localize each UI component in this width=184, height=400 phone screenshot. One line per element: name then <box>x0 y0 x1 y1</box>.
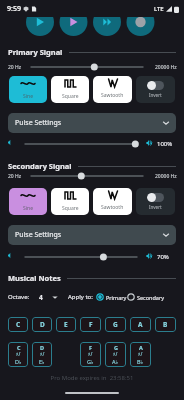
button[interactable]: Invert <box>136 188 175 215</box>
staticText: D♭ <box>15 358 22 365</box>
button[interactable]: G <box>105 342 126 367</box>
staticText: 4 <box>39 293 43 302</box>
staticText: Sine <box>23 93 33 100</box>
button[interactable]: Mute <box>6 251 15 260</box>
staticText: G <box>113 320 118 329</box>
button[interactable]: Play secondary <box>60 17 88 36</box>
staticText: 20000 Hz <box>155 173 177 180</box>
staticText: Square <box>62 205 79 212</box>
staticText: Primary Signal <box>8 47 63 57</box>
staticText: 20 Hz <box>8 173 22 180</box>
button[interactable]: A <box>130 317 151 332</box>
button[interactable]: Play primary <box>26 17 54 36</box>
staticText: ♯/ <box>138 351 143 358</box>
button[interactable]: E <box>56 317 76 332</box>
button[interactable]: C <box>8 342 28 367</box>
staticText: Sine <box>23 205 33 212</box>
button[interactable]: B <box>155 317 176 332</box>
staticText: 100% <box>157 140 173 148</box>
staticText: Pulse Settings <box>15 118 62 128</box>
staticText: Pulse Settings <box>15 230 62 240</box>
button[interactable]: Mute <box>6 138 15 147</box>
staticText: E <box>64 320 68 329</box>
button[interactable]: A <box>130 342 151 367</box>
staticText: 9:59 <box>7 4 21 14</box>
staticText: 20 Hz <box>8 64 22 71</box>
staticText: A <box>138 320 143 329</box>
staticText: F <box>89 344 93 351</box>
staticText: Octave: <box>8 293 30 301</box>
staticText: B <box>163 320 168 329</box>
button[interactable]: D <box>32 342 52 367</box>
staticText: F <box>89 320 93 329</box>
staticText: ♯/ <box>88 351 93 358</box>
staticText: C <box>16 320 21 329</box>
button[interactable]: F <box>80 317 101 332</box>
staticText: Invert <box>149 204 162 210</box>
staticText: LTE <box>154 5 164 13</box>
button[interactable]: G <box>105 317 126 332</box>
staticText: Sawtooth <box>101 92 124 99</box>
button[interactable]: Invert <box>136 76 175 103</box>
button[interactable]: Square <box>51 188 89 215</box>
staticText: Secondary Signal <box>8 161 72 171</box>
button[interactable]: Pulse Settings <box>8 113 176 133</box>
staticText: 70% <box>157 253 169 261</box>
button[interactable]: Pulse Settings <box>8 225 176 245</box>
button[interactable]: C <box>8 317 28 332</box>
button[interactable]: Play both <box>94 17 122 36</box>
button[interactable]: F <box>80 342 101 367</box>
staticText: Square <box>62 93 79 100</box>
staticText: D <box>40 344 45 351</box>
button[interactable]: Sine <box>9 188 47 215</box>
staticText: ♯/ <box>40 351 45 358</box>
staticText: G <box>114 344 118 351</box>
staticText: C <box>17 344 21 351</box>
button[interactable]: Octave selector <box>39 290 58 304</box>
button[interactable]: Sine <box>9 76 47 103</box>
staticText: G♭ <box>87 358 94 365</box>
staticText: ♯/ <box>16 351 21 358</box>
staticText: E♭ <box>39 358 45 365</box>
staticText: Invert <box>149 92 162 98</box>
staticText: A♭ <box>112 358 119 365</box>
button[interactable]: D <box>32 317 52 332</box>
button[interactable]: Stop <box>128 17 156 36</box>
staticText: Primary <box>106 294 127 301</box>
staticText: 20000 Hz <box>155 64 177 71</box>
staticText: Musical Notes <box>8 273 61 283</box>
staticText: Secondary <box>137 294 165 301</box>
staticText: Apply to: <box>68 293 93 301</box>
staticText: ♯/ <box>113 351 118 358</box>
staticText: Sawtooth <box>101 204 124 211</box>
staticText: B♭ <box>137 358 144 365</box>
button[interactable]: Sawtooth <box>93 188 132 215</box>
staticText: A <box>139 344 143 351</box>
button[interactable]: Secondary <box>127 290 165 304</box>
button[interactable]: Square <box>51 76 89 103</box>
button[interactable]: Primary <box>96 290 127 304</box>
button[interactable]: Sawtooth <box>93 76 132 103</box>
staticText: Pro Mode expires in 23:58:51 <box>0 374 184 382</box>
staticText: D <box>40 320 45 329</box>
